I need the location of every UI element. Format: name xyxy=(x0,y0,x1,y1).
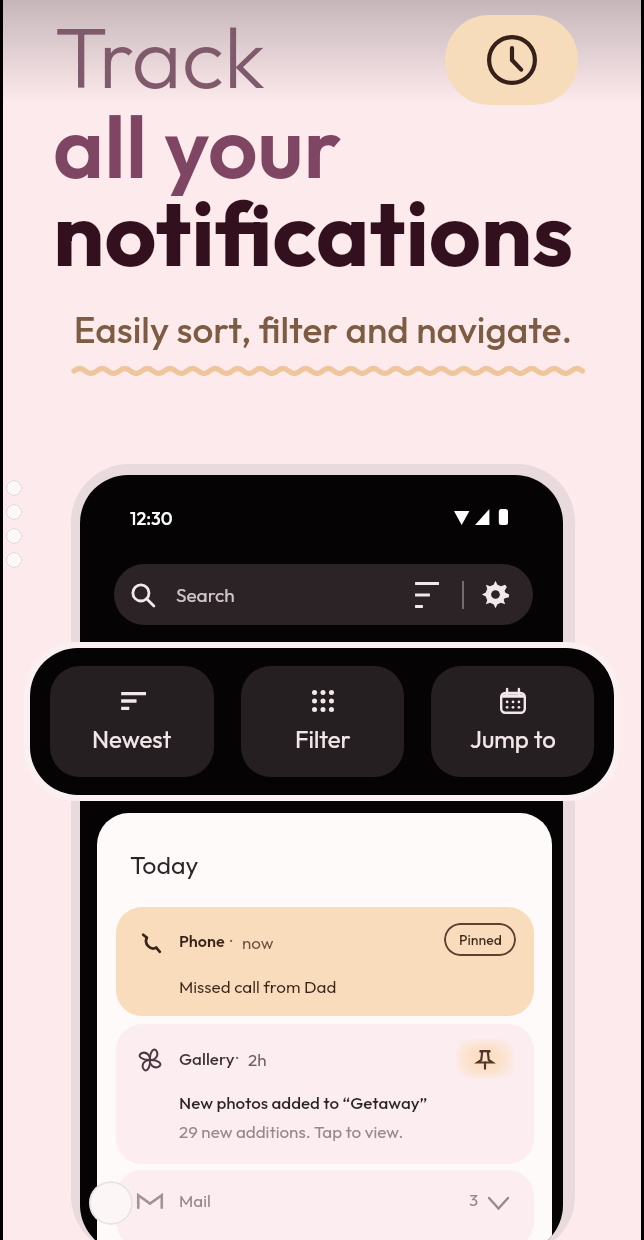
staticText: Filter xyxy=(295,724,351,754)
other: Sort xyxy=(413,582,439,608)
staticText: notifications xyxy=(53,176,574,289)
button[interactable]: Mail xyxy=(116,1170,534,1240)
button[interactable]: Phone xyxy=(116,907,534,1016)
other: Search xyxy=(130,582,156,608)
staticText: now xyxy=(242,932,274,953)
staticText: Newest xyxy=(92,724,172,754)
button[interactable]: Recent xyxy=(445,15,578,105)
button[interactable]: Pinned xyxy=(444,923,516,956)
staticText: all your xyxy=(53,91,342,201)
staticText: Easily sort, filter and navigate. xyxy=(4,306,642,353)
staticText: Phone xyxy=(179,931,225,951)
staticText: 12:30 xyxy=(130,507,173,530)
staticText: Missed call from Dad xyxy=(179,976,337,997)
staticText: 3 xyxy=(469,1189,479,1210)
staticText: · xyxy=(236,1047,239,1068)
staticText: Track xyxy=(54,2,266,110)
button[interactable]: Pin xyxy=(456,1039,514,1079)
staticText: Jump to xyxy=(470,724,556,754)
button[interactable]: Jump to xyxy=(431,666,594,777)
staticText: Search xyxy=(176,583,235,607)
staticText: Gallery xyxy=(179,1048,235,1069)
button[interactable]: Gallery xyxy=(116,1024,534,1164)
staticText: 2h xyxy=(248,1049,267,1070)
staticText: Today xyxy=(130,849,199,881)
button[interactable]: Newest xyxy=(50,666,214,777)
staticText: New photos added to “Getaway” xyxy=(179,1092,428,1113)
other: Settings xyxy=(481,580,510,609)
staticText: Pinned xyxy=(459,931,502,949)
staticText: · xyxy=(230,930,233,951)
staticText: 29 new additions. Tap to view. xyxy=(179,1121,404,1142)
button[interactable]: Filter xyxy=(241,666,404,777)
button[interactable]: Search xyxy=(114,564,533,625)
staticText: Mail xyxy=(179,1190,211,1211)
